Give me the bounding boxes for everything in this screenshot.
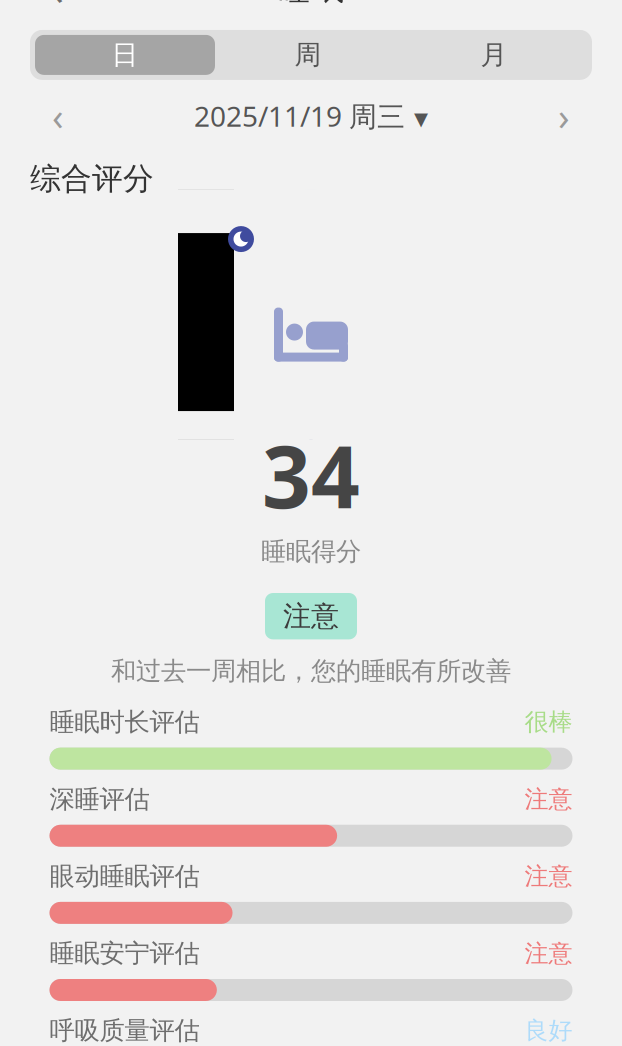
button[interactable]: 2025/11/19 周三 ▾ [194, 97, 428, 134]
button[interactable]: Back [34, 0, 80, 11]
staticText: 注意 [524, 939, 572, 968]
staticText: 睡眠时长评估 [49, 706, 199, 738]
button[interactable]: 日 [35, 35, 215, 75]
button[interactable]: Previous day [30, 94, 86, 138]
staticText: ‹ [50, 0, 64, 18]
staticText: ‹ [52, 91, 64, 141]
staticText: 注意 [283, 599, 339, 633]
staticText: 眼动睡眠评估 [49, 861, 199, 892]
button[interactable]: Next day [536, 94, 592, 138]
staticText: 综合评分 [30, 160, 154, 198]
staticText: 注意 [524, 784, 572, 814]
staticText: 和过去一周相比，您的睡眠有所改善 [111, 655, 511, 686]
staticText: 34 [262, 419, 360, 532]
staticText: 睡眠 [278, 0, 344, 8]
button[interactable]: 周 [215, 35, 401, 75]
staticText: 注意 [524, 862, 572, 891]
staticText: 很棒 [524, 707, 572, 737]
button[interactable]: 月 [401, 35, 587, 75]
staticText: 睡眠得分 [261, 536, 361, 567]
staticText: 良好 [524, 1016, 572, 1045]
staticText: 2025/11/19 周三 ▾ [194, 97, 428, 134]
staticText: 周 [294, 38, 321, 71]
staticText: 深睡评估 [49, 784, 149, 815]
staticText: 睡眠安宁评估 [49, 938, 199, 969]
staticText: 月 [480, 38, 507, 71]
staticText: › [558, 91, 570, 141]
staticText: 日 [111, 38, 138, 71]
staticText: 呼吸质量评估 [49, 1015, 199, 1046]
